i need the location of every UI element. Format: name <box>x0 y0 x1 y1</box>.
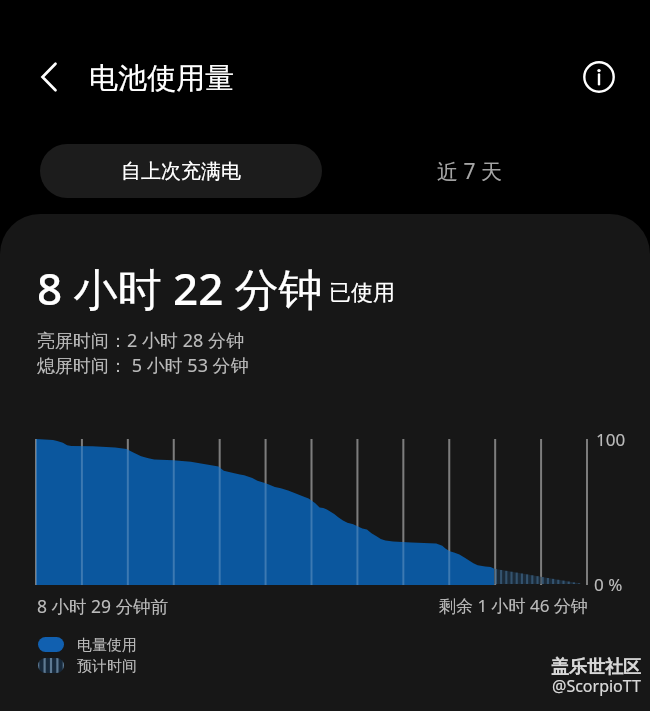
staticText: 电池使用量 <box>89 60 234 97</box>
button[interactable]: Information <box>576 54 622 100</box>
staticText: 已使用 <box>329 279 395 307</box>
staticText: 8 小时 29 分钟前 <box>37 594 169 618</box>
button[interactable]: 近 7 天 <box>340 144 598 198</box>
staticText: 盖乐世社区 <box>551 656 641 679</box>
staticText: 自上次充满电 <box>121 159 241 184</box>
staticText: 近 7 天 <box>437 157 502 186</box>
staticText: 预计时间 <box>77 657 137 676</box>
staticText: 电量使用 <box>77 636 137 655</box>
staticText: 剩余 1 小时 46 分钟 <box>439 594 588 617</box>
button[interactable]: 自上次充满电 <box>40 144 322 198</box>
staticText: @ScorpioTT <box>552 675 641 697</box>
staticText: 100 <box>596 428 626 451</box>
staticText: 0 % <box>594 573 623 596</box>
staticText: 8 小时 22 分钟 <box>37 258 323 318</box>
button[interactable]: Back <box>26 54 72 100</box>
staticText: 亮屏时间：2 小时 28 分钟 <box>37 328 244 353</box>
staticText: 熄屏时间： 5 小时 53 分钟 <box>37 353 249 378</box>
